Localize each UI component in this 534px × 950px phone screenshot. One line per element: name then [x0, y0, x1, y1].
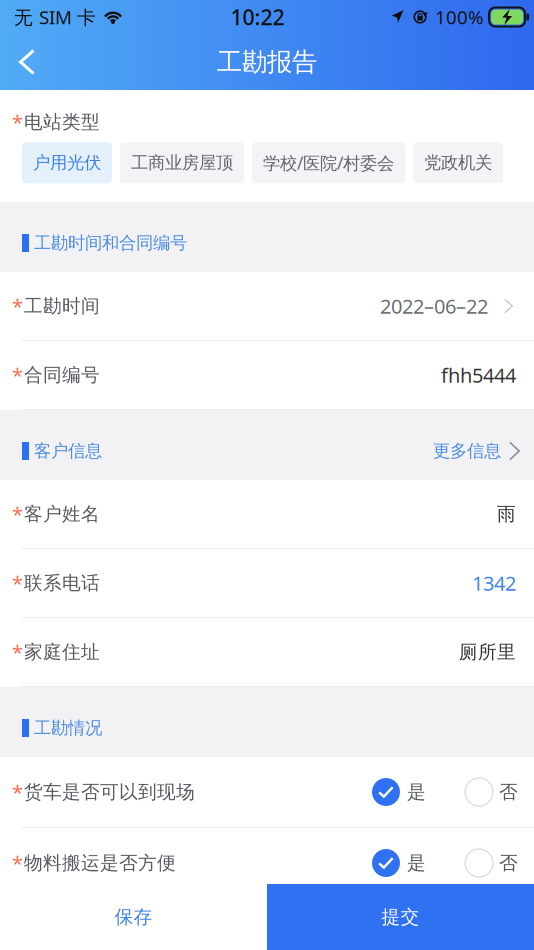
staticText: 党政机关 — [424, 152, 492, 173]
staticText: * — [12, 639, 23, 665]
staticText: 厕所里 — [459, 640, 516, 663]
button[interactable]: 户用光伏 — [22, 142, 112, 183]
staticText: 1342 — [472, 570, 516, 596]
staticText: 电站类型 — [24, 110, 100, 133]
staticText: * — [12, 109, 23, 135]
staticText: 工勘情况 — [34, 717, 102, 739]
button[interactable]: Back — [0, 35, 54, 89]
staticText: 无 SIM 卡 — [14, 5, 96, 29]
button[interactable]: 学校/医院/村委会 — [252, 142, 405, 183]
staticText: 是 — [407, 922, 426, 945]
staticText: 10:22 — [231, 3, 285, 31]
staticText: * — [12, 362, 23, 388]
staticText: 2022–06–22 — [380, 293, 488, 319]
staticText: 客户信息 — [34, 440, 102, 462]
staticText: 更多信息 — [433, 440, 501, 462]
staticText: 物料搬运是否方便 — [24, 851, 176, 874]
staticText: fhh5444 — [441, 362, 516, 388]
button[interactable]: 保存 — [0, 884, 267, 950]
staticText: 是 — [407, 780, 426, 803]
staticText: 联系电话 — [24, 571, 100, 594]
staticText: * — [12, 779, 23, 805]
staticText: 家庭住址 — [24, 640, 100, 663]
staticText: 否 — [499, 851, 518, 874]
staticText: 合同编号 — [24, 363, 100, 386]
button[interactable]: 否 — [426, 778, 518, 806]
button[interactable]: 是 — [372, 778, 426, 806]
button[interactable]: 更多信息 — [433, 432, 520, 470]
staticText: 提交 — [381, 905, 419, 928]
button[interactable]: 工商业房屋顶 — [120, 142, 244, 183]
button[interactable]: 是 — [372, 920, 426, 948]
button[interactable]: 是 — [372, 849, 426, 877]
staticText: * — [12, 501, 23, 527]
staticText: * — [12, 570, 23, 596]
button[interactable]: * — [0, 480, 534, 549]
staticText: * — [12, 850, 23, 876]
staticText: 货车是否可以到现场 — [24, 780, 195, 803]
button[interactable]: 党政机关 — [413, 142, 503, 183]
staticText: 工商业房屋顶 — [131, 152, 233, 173]
button[interactable]: * — [0, 341, 534, 410]
staticText: 工勘报告 — [217, 46, 317, 77]
button[interactable]: 否 — [426, 849, 518, 877]
staticText: 工勘时间和合同编号 — [34, 232, 187, 254]
staticText: 户用光伏 — [33, 152, 101, 173]
staticText: 客户姓名 — [24, 502, 100, 525]
staticText: 雨 — [497, 502, 516, 525]
staticText: 否 — [499, 780, 518, 803]
button[interactable]: 提交 — [267, 884, 534, 950]
staticText: 学校/医院/村委会 — [263, 151, 394, 174]
staticText: 是 — [407, 851, 426, 874]
staticText: 是否需要吊车 — [24, 922, 138, 945]
staticText: 保存 — [114, 905, 152, 928]
staticText: 工勘时间 — [24, 294, 100, 317]
staticText: 100% — [435, 5, 484, 29]
button[interactable]: * — [0, 272, 534, 341]
button[interactable]: * — [0, 618, 534, 687]
button[interactable]: * — [0, 549, 534, 618]
staticText: * — [12, 293, 23, 319]
